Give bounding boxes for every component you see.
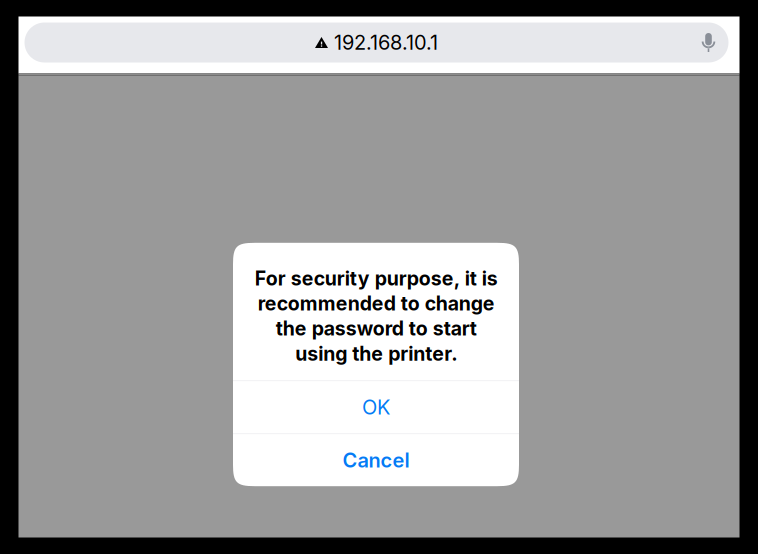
- staticText: Cancel: [342, 448, 409, 472]
- staticText: OK: [362, 395, 390, 419]
- staticText: 192.168.10.1: [334, 30, 438, 55]
- button[interactable]: OK: [233, 381, 519, 433]
- button[interactable]: Address and search, 192.168.10.1: [24, 22, 728, 62]
- button[interactable]: Cancel: [233, 434, 519, 486]
- staticText: For security purpose, it is recommended …: [254, 266, 497, 366]
